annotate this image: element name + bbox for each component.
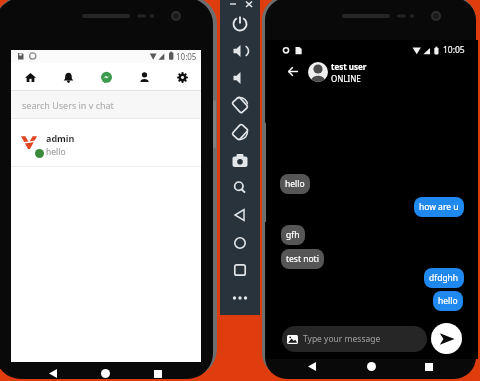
button[interactable]: Back xyxy=(296,358,328,375)
staticText: test user xyxy=(331,61,367,72)
staticText: admin xyxy=(46,132,75,144)
staticText: test noti xyxy=(286,253,319,265)
button[interactable]: hello xyxy=(433,291,463,311)
button[interactable]: Contact avatar xyxy=(308,62,328,82)
button[interactable]: Profile xyxy=(125,63,163,91)
staticText: Type your message xyxy=(303,333,381,345)
button[interactable]: Notifications xyxy=(49,63,87,91)
staticText: gfh xyxy=(286,229,300,241)
staticText: search Users in v chat xyxy=(22,99,114,111)
button[interactable]: how are u xyxy=(414,197,464,217)
button[interactable]: hello xyxy=(280,174,310,194)
button[interactable]: Recents xyxy=(143,365,172,381)
button[interactable]: gfh xyxy=(281,225,305,245)
staticText: 10:05 xyxy=(443,44,465,56)
button[interactable]: admin xyxy=(11,119,201,167)
button[interactable]: Type your message xyxy=(282,326,427,352)
button[interactable]: test user xyxy=(331,61,367,84)
staticText: hello xyxy=(285,178,305,190)
staticText: hello xyxy=(46,146,66,158)
button[interactable]: Back xyxy=(280,59,305,84)
button[interactable]: search Users in v chat xyxy=(11,91,201,119)
staticText: hello xyxy=(438,295,458,307)
button[interactable]: test noti xyxy=(281,249,324,269)
button[interactable]: Home xyxy=(91,365,120,381)
button[interactable]: Home xyxy=(11,63,49,91)
button[interactable]: dfdghh xyxy=(424,268,464,288)
button[interactable]: Home xyxy=(355,358,387,375)
staticText: 10:05 xyxy=(176,51,197,62)
button[interactable]: Recents xyxy=(413,358,445,375)
staticText: dfdghh xyxy=(429,272,459,284)
button[interactable]: Back xyxy=(38,365,67,381)
button[interactable]: Messages xyxy=(87,63,125,91)
staticText: how are u xyxy=(419,201,459,213)
button[interactable]: Settings xyxy=(163,63,201,91)
staticText: ONLINE xyxy=(331,73,361,84)
button[interactable]: Send xyxy=(431,323,462,354)
